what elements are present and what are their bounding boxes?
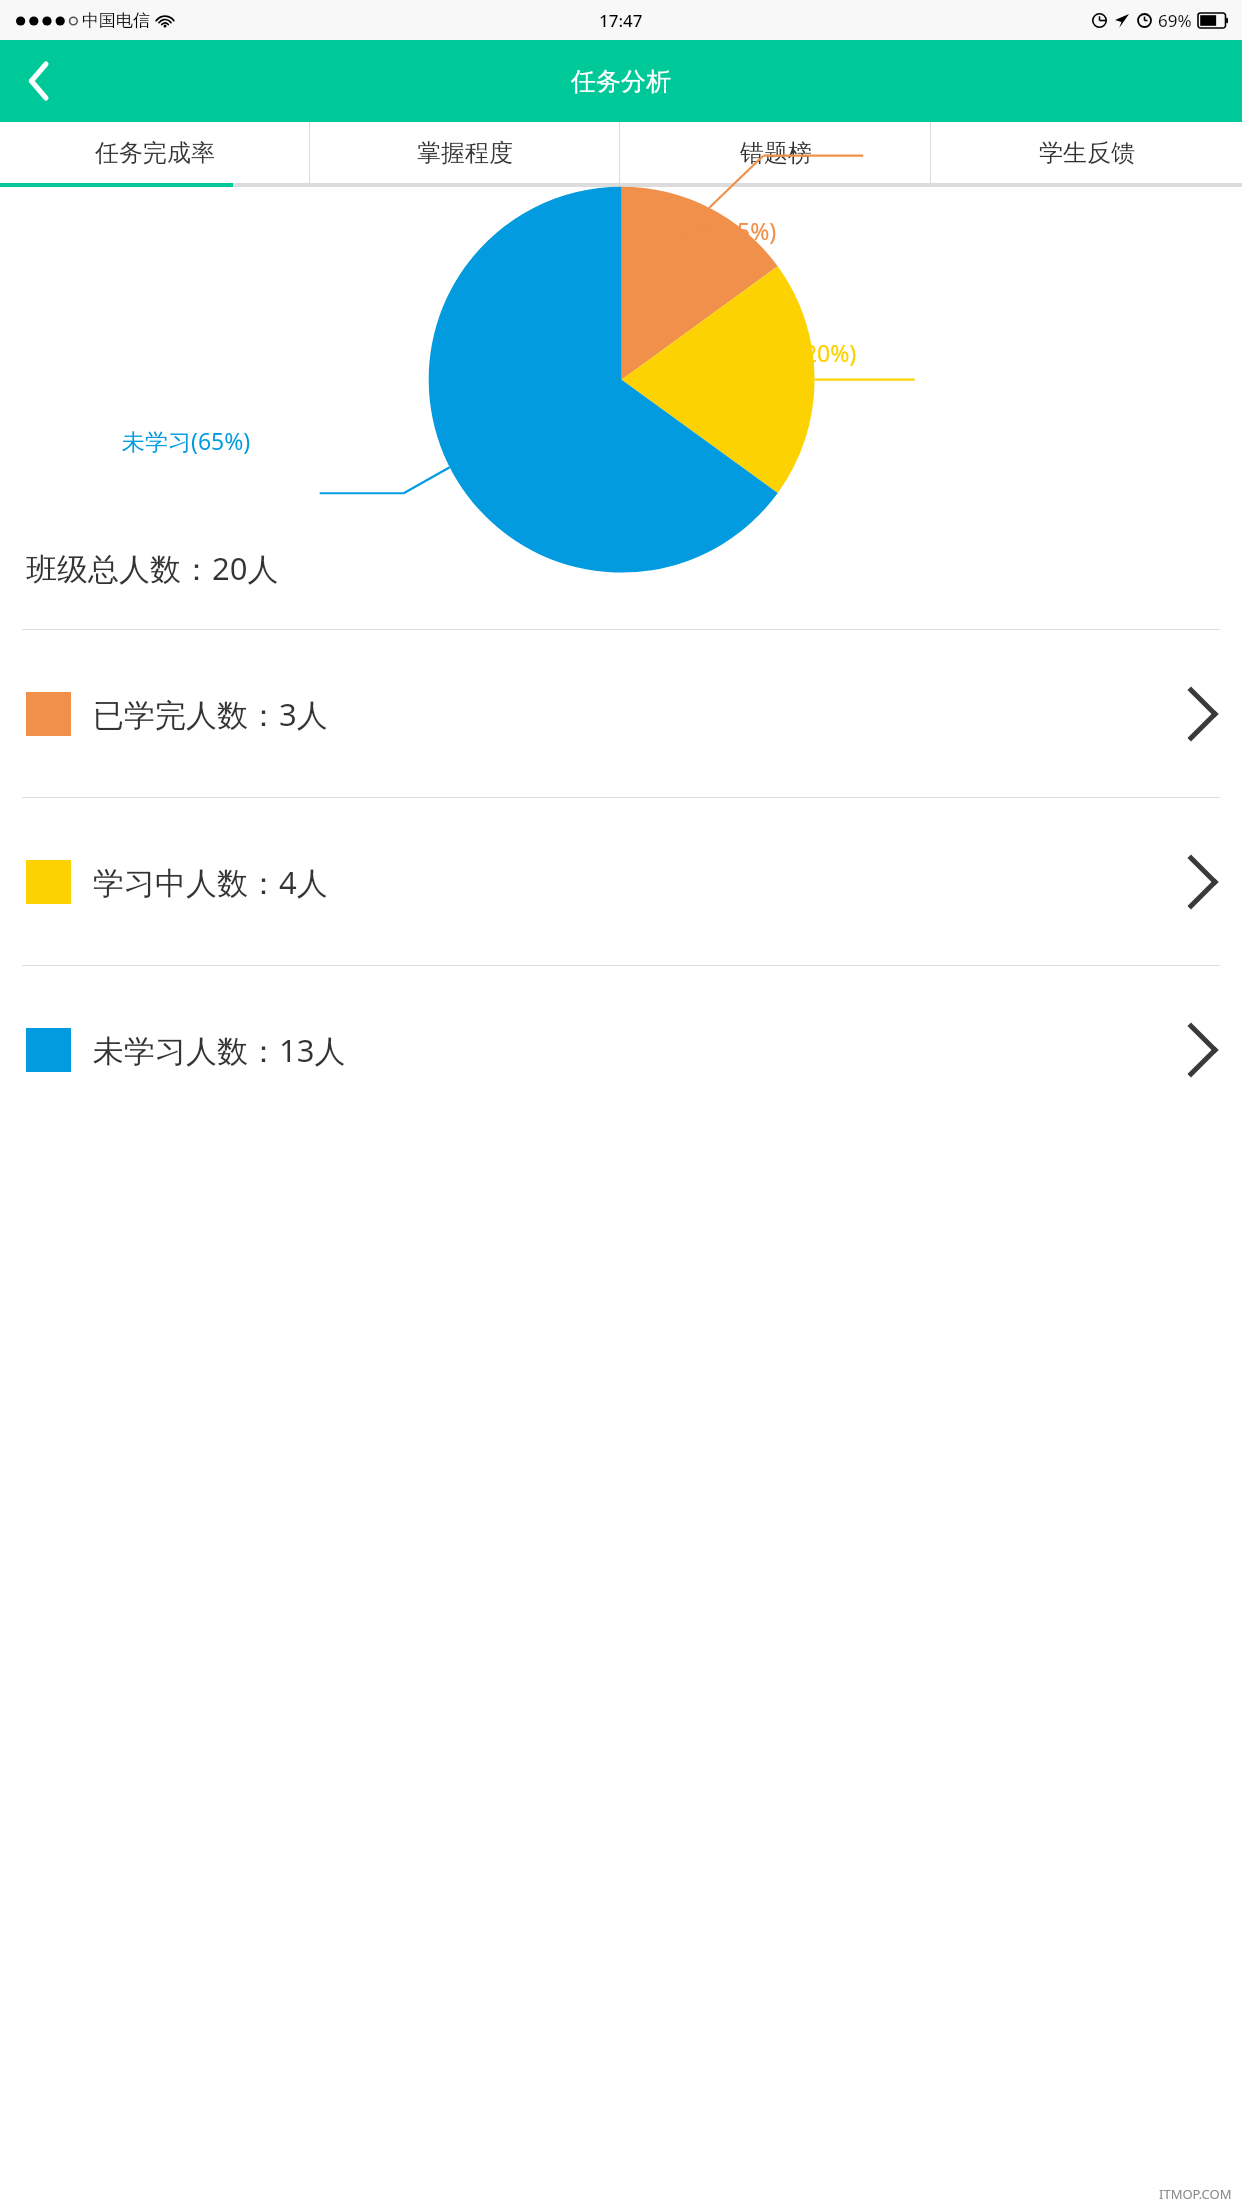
button[interactable]: 未学习人数：13人 xyxy=(0,966,1242,1133)
staticText: 17:47 xyxy=(599,9,643,32)
button[interactable]: 学习中人数：4人 xyxy=(0,798,1242,965)
staticText: 错题榜 xyxy=(740,138,812,168)
staticText: 任务完成率 xyxy=(95,138,215,168)
staticText: 学习中人数：4人 xyxy=(93,861,328,903)
staticText: 已学完人数：3人 xyxy=(93,693,328,735)
staticText: 中国电信 xyxy=(82,10,150,31)
staticText: 69% xyxy=(1158,9,1192,32)
button[interactable]: 学生反馈 xyxy=(931,122,1242,183)
staticText: 学生反馈 xyxy=(1039,138,1135,168)
staticText: 班级总人数：20人 xyxy=(26,547,279,589)
button[interactable]: 掌握程度 xyxy=(310,122,620,183)
staticText: 已学完(15%) xyxy=(648,215,777,246)
staticText: 掌握程度 xyxy=(417,138,513,168)
button[interactable]: Back xyxy=(0,40,78,122)
staticText: 未学习(65%) xyxy=(122,425,251,456)
staticText: 任务分析 xyxy=(571,66,671,97)
button[interactable]: 错题榜 xyxy=(620,122,931,183)
staticText: 学习中(20%) xyxy=(728,337,857,368)
button[interactable]: 任务完成率 xyxy=(0,122,310,183)
staticText: 未学习人数：13人 xyxy=(93,1029,346,1071)
staticText: ITMOP.COM xyxy=(1159,2185,1232,2203)
button[interactable]: 已学完人数：3人 xyxy=(0,630,1242,797)
